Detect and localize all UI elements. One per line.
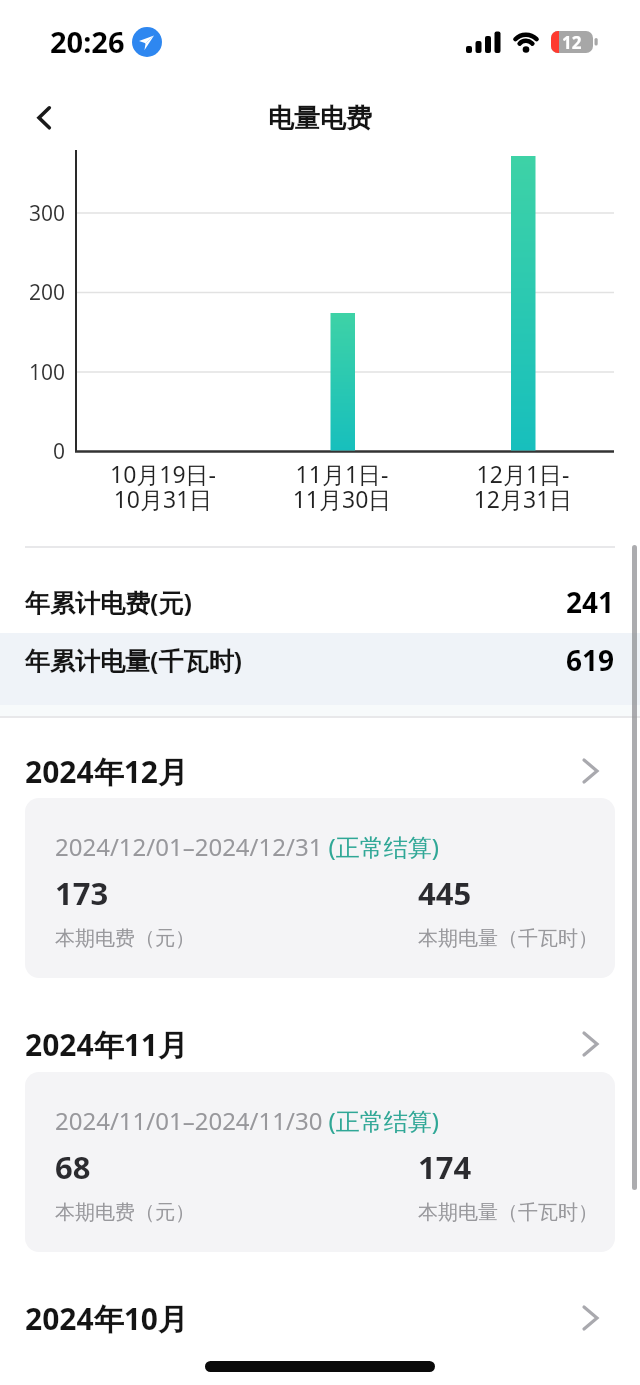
button[interactable]: 2024/12/01–2024/12/31 (正常结算): [25, 798, 615, 978]
staticText: 年累计电费(元): [25, 585, 192, 619]
button[interactable]: [0, 1019, 640, 1069]
staticText: 11月1日-: [242, 458, 442, 489]
staticText: 0: [53, 437, 66, 466]
staticText: 200: [29, 278, 66, 307]
staticText: 2024/12/01–2024/12/31 (正常结算): [55, 830, 439, 863]
button[interactable]: 2024/11/01–2024/11/30 (正常结算): [25, 1072, 615, 1252]
button[interactable]: [0, 1293, 640, 1343]
staticText: 本期电量（千瓦时）: [418, 1200, 598, 1225]
staticText: 11月30日: [242, 483, 442, 514]
staticText: 2024年12月: [25, 751, 188, 792]
staticText: 68: [55, 1146, 91, 1188]
staticText: 173: [55, 872, 109, 914]
staticText: 174: [418, 1146, 472, 1188]
staticText: 619: [566, 641, 615, 679]
staticText: 本期电费（元）: [55, 926, 195, 951]
staticText: 300: [29, 199, 66, 228]
staticText: 2024/11/01–2024/11/30 (正常结算): [55, 1104, 439, 1137]
staticText: 本期电费（元）: [55, 1200, 195, 1225]
staticText: 2024年11月: [25, 1024, 188, 1065]
staticText: 12: [562, 31, 582, 53]
staticText: 445: [418, 872, 472, 914]
staticText: 20:26: [50, 22, 125, 61]
staticText: 年累计电量(千瓦时): [25, 643, 242, 677]
staticText: 电量电费: [268, 102, 372, 135]
staticText: 12月1日-: [423, 458, 623, 489]
staticText: 本期电量（千瓦时）: [418, 926, 598, 951]
staticText: 241: [566, 583, 615, 621]
staticText: 10月31日: [63, 483, 263, 514]
staticText: 100: [29, 358, 66, 387]
button[interactable]: [0, 746, 640, 796]
staticText: 2024年10月: [25, 1298, 188, 1339]
staticText: 10月19日-: [63, 458, 263, 489]
staticText: 12月31日: [423, 483, 623, 514]
button[interactable]: [22, 98, 66, 138]
